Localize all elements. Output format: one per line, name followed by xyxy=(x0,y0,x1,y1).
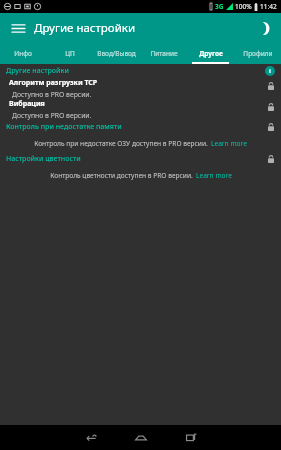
staticText: Контроль при недостатке памяти xyxy=(6,122,122,132)
staticText: Алгоритм разгрузки TCP xyxy=(9,78,98,88)
button[interactable]: Home xyxy=(128,425,154,450)
staticText: Другое xyxy=(199,49,223,58)
staticText: Доступно в PRO версии. xyxy=(12,111,92,120)
button[interactable]: Learn more xyxy=(196,171,232,180)
button[interactable]: Инфо xyxy=(0,42,46,64)
button[interactable]: Контроль цветности доступен в PRO версии… xyxy=(0,166,281,184)
staticText: Вибрация xyxy=(9,99,45,109)
button[interactable]: Контроль при недостатке ОЗУ доступен в P… xyxy=(0,134,281,152)
staticText: Ввод/Вывод xyxy=(97,49,136,58)
staticText: Другие настройки xyxy=(34,20,136,36)
staticText: 3G xyxy=(215,2,224,11)
button[interactable]: Learn more xyxy=(211,139,247,148)
staticText: Инфо xyxy=(14,49,32,58)
button[interactable]: Вибрация xyxy=(0,99,281,120)
staticText: 11:42 xyxy=(260,2,277,11)
staticText: Контроль при недостатке ОЗУ доступен в P… xyxy=(34,139,208,148)
button[interactable]: Профили xyxy=(234,42,281,64)
button[interactable]: Open navigation menu xyxy=(8,18,28,38)
staticText: ЦП xyxy=(65,49,75,58)
staticText: 100% xyxy=(235,2,252,11)
button[interactable]: Toggle night mode xyxy=(252,17,274,39)
staticText: Настройки цветности xyxy=(6,154,81,164)
button[interactable]: Ввод/Вывод xyxy=(93,42,140,64)
button[interactable]: Другое xyxy=(187,42,234,64)
staticText: i xyxy=(269,67,271,75)
staticText: Профили xyxy=(243,49,273,58)
staticText: Контроль цветности доступен в PRO версии… xyxy=(50,171,193,180)
button[interactable]: Back xyxy=(78,425,104,450)
staticText: Доступно в PRO версии. xyxy=(12,90,92,99)
button[interactable]: Контроль при недостатке памяти xyxy=(0,120,281,134)
button[interactable]: Питание xyxy=(140,42,187,64)
other: Help xyxy=(265,66,275,76)
button[interactable]: ЦП xyxy=(46,42,93,64)
button[interactable]: Алгоритм разгрузки TCP xyxy=(0,78,281,99)
button[interactable]: Другие настройки xyxy=(0,64,281,78)
staticText: Питание xyxy=(150,49,178,58)
button[interactable]: Recent apps xyxy=(178,425,204,450)
staticText: Другие настройки xyxy=(6,66,69,76)
button[interactable]: Настройки цветности xyxy=(0,152,281,166)
